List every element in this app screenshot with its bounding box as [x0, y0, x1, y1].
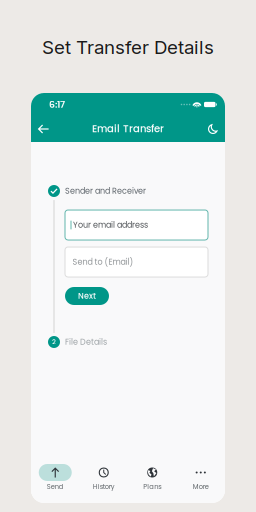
button[interactable]: Send — [31, 460, 79, 494]
button[interactable]: Back — [33, 119, 53, 139]
staticText: Sender and Receiver — [65, 185, 146, 197]
staticText: Plans — [143, 482, 161, 491]
button[interactable]: Plans — [128, 460, 176, 494]
staticText: History — [93, 482, 115, 491]
button[interactable]: Toggle dark mode — [203, 119, 223, 139]
staticText: Your email address — [73, 219, 148, 231]
staticText: Next — [78, 290, 96, 302]
staticText: 2 — [52, 337, 56, 347]
staticText: File Details — [65, 336, 107, 348]
button[interactable]: History — [79, 460, 128, 494]
staticText: Email Transfer — [92, 122, 164, 136]
staticText: Set Transfer Details — [42, 36, 214, 59]
staticText: Send — [47, 482, 64, 491]
staticText: 6:17 — [49, 98, 65, 111]
button[interactable]: Next — [65, 287, 109, 305]
button[interactable]: More — [176, 460, 225, 494]
staticText: Send to (Email) — [72, 256, 133, 268]
staticText: More — [193, 482, 209, 491]
